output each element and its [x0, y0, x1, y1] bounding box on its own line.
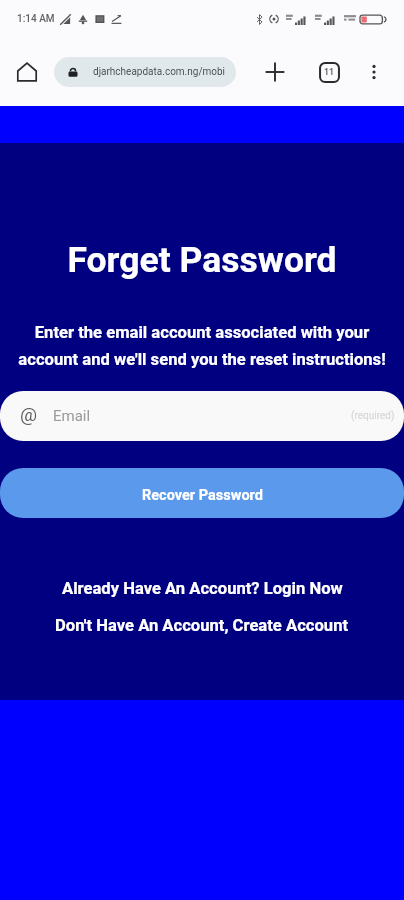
staticText: 11	[324, 67, 335, 78]
staticText: Recover Password	[142, 487, 263, 504]
staticText: Already Have An Account? Login Now	[62, 579, 343, 598]
button[interactable]: Don't Have An Account, Create Account	[0, 613, 404, 637]
staticText: 1:14 AM	[17, 13, 55, 25]
staticText: (required)	[351, 410, 395, 422]
staticText: Email	[53, 407, 91, 425]
button[interactable]: Recover Password	[0, 468, 404, 518]
button[interactable]: Already Have An Account? Login Now	[0, 576, 404, 600]
staticText: @	[20, 403, 36, 425]
staticText: Don't Have An Account, Create Account	[55, 616, 349, 635]
button[interactable]: Tabs	[313, 49, 346, 95]
button[interactable]: More options	[346, 49, 401, 95]
button[interactable]: New tab	[236, 49, 313, 95]
staticText: Enter the email account associated with …	[14, 323, 390, 369]
button[interactable]: @	[0, 391, 404, 441]
staticText: Forget Password	[0, 239, 404, 281]
button[interactable]: djarhcheapdata.com.ng/mobi	[54, 57, 236, 87]
staticText: djarhcheapdata.com.ng/mobi	[93, 66, 226, 78]
button[interactable]: Home	[0, 49, 54, 95]
